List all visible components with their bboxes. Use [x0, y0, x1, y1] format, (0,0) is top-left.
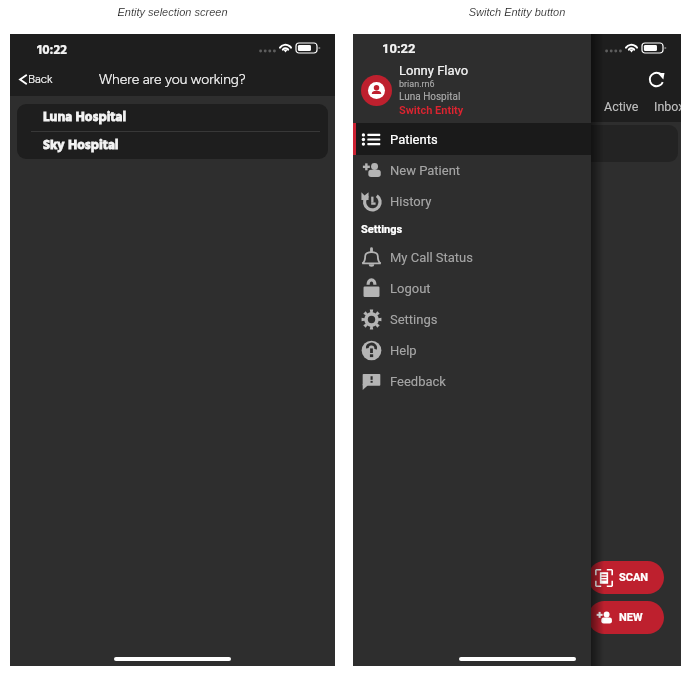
button[interactable]: Help — [353, 335, 591, 366]
button[interactable]: New Patient — [353, 155, 591, 186]
button[interactable]: Inbox — [654, 99, 681, 114]
staticText: Sky Hospital — [43, 135, 119, 157]
staticText: Luna Hospital — [399, 91, 461, 103]
staticText: Lonny Flavo — [399, 63, 469, 78]
staticText: History — [390, 194, 432, 209]
button[interactable]: Logout — [353, 273, 591, 304]
staticText: Entity selection screen — [10, 6, 335, 18]
staticText: Logout — [390, 281, 431, 296]
button[interactable]: Luna Hospital — [17, 104, 328, 131]
button[interactable]: History — [353, 186, 591, 217]
button[interactable]: SCAN — [588, 561, 664, 594]
button[interactable]: Patients — [353, 123, 591, 155]
button[interactable]: Back — [10, 66, 61, 92]
staticText: My Call Status — [390, 250, 473, 265]
button[interactable]: My Call Status — [353, 242, 591, 273]
button[interactable]: NEW — [588, 601, 664, 634]
staticText: Patients — [390, 132, 438, 147]
staticText: NEW — [619, 611, 643, 624]
staticText: Settings — [361, 223, 403, 236]
staticText: Luna Hospital — [43, 107, 127, 129]
staticText: Switch Entity button — [353, 6, 681, 18]
staticText: Where are you working? — [99, 71, 246, 88]
button[interactable]: Active — [604, 99, 639, 114]
button[interactable]: Settings — [353, 304, 591, 335]
button[interactable]: Switch Entity — [399, 104, 464, 117]
staticText: Help — [390, 343, 417, 358]
staticText: Feedback — [390, 374, 446, 389]
staticText: 10:22 — [382, 41, 416, 56]
button[interactable]: Refresh — [647, 70, 666, 89]
staticText: 10:22 — [37, 40, 67, 62]
staticText: brian.rn6 — [399, 79, 435, 90]
staticText: Back — [28, 72, 53, 86]
button[interactable]: Feedback — [353, 366, 591, 397]
button[interactable]: Sky Hospital — [17, 132, 328, 159]
staticText: Settings — [390, 312, 438, 327]
staticText: SCAN — [619, 571, 649, 584]
staticText: New Patient — [390, 163, 461, 178]
